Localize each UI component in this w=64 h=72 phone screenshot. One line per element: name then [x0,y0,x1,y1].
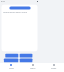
button[interactable]: Profile [43,63,64,72]
button[interactable]: Action one [5,53,19,58]
button[interactable]: Action three [3,58,19,63]
staticText: Home [9,67,14,69]
button[interactable]: Home [0,63,22,72]
staticText: Profile [51,67,57,69]
button[interactable]: Search [22,63,43,72]
button[interactable]: Search [9,6,31,10]
button[interactable]: Action two [19,53,33,58]
staticText: Lorem ipsum dolor sit am [3,11,28,14]
staticText: Search [30,67,36,69]
staticText: 9:30 [1,0,5,3]
button[interactable]: Action four [19,58,33,63]
